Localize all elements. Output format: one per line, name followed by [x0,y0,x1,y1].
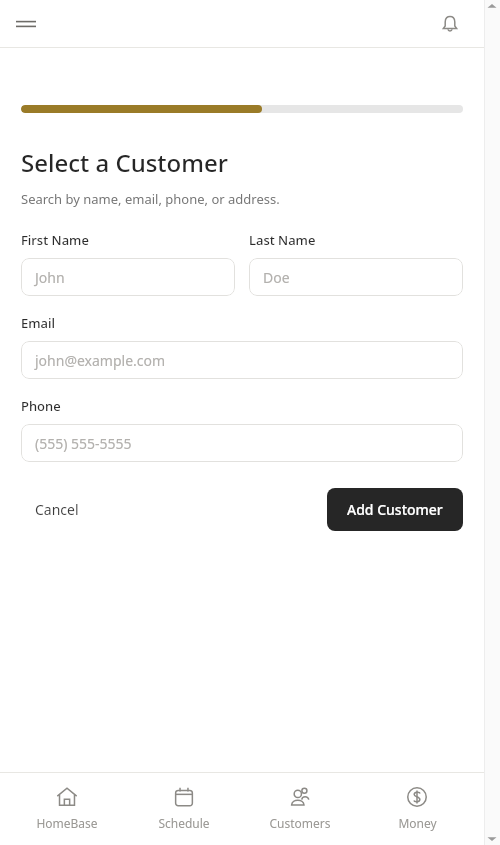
button[interactable]: John [21,258,235,296]
button[interactable]: Cancel [21,490,93,529]
staticText: Schedule [158,815,210,831]
staticText: Add Customer [347,500,443,519]
staticText: Search by name, email, phone, or address… [21,190,280,208]
staticText: John [35,268,65,287]
button[interactable]: HomeBase [17,773,117,831]
button[interactable]: Add Customer [327,488,463,531]
staticText: Customers [269,815,331,831]
staticText: john@example.com [35,351,166,370]
staticText: (555) 555-5555 [35,434,132,453]
button[interactable]: Menu [8,6,44,42]
staticText: Email [21,314,56,332]
button[interactable]: Money [367,773,467,831]
button[interactable]: Customers [250,773,350,831]
button[interactable]: Doe [249,258,463,296]
staticText: Last Name [249,231,316,249]
staticText: Doe [263,268,290,287]
button[interactable]: Notifications [432,6,468,42]
staticText: Cancel [35,500,79,519]
button[interactable]: john@example.com [21,341,463,379]
staticText: Phone [21,397,61,415]
staticText: Money [398,815,437,831]
staticText: Select a Customer [21,146,228,179]
staticText: First Name [21,231,89,249]
button[interactable]: Schedule [134,773,234,831]
staticText: HomeBase [36,815,98,831]
button[interactable]: (555) 555-5555 [21,424,463,462]
